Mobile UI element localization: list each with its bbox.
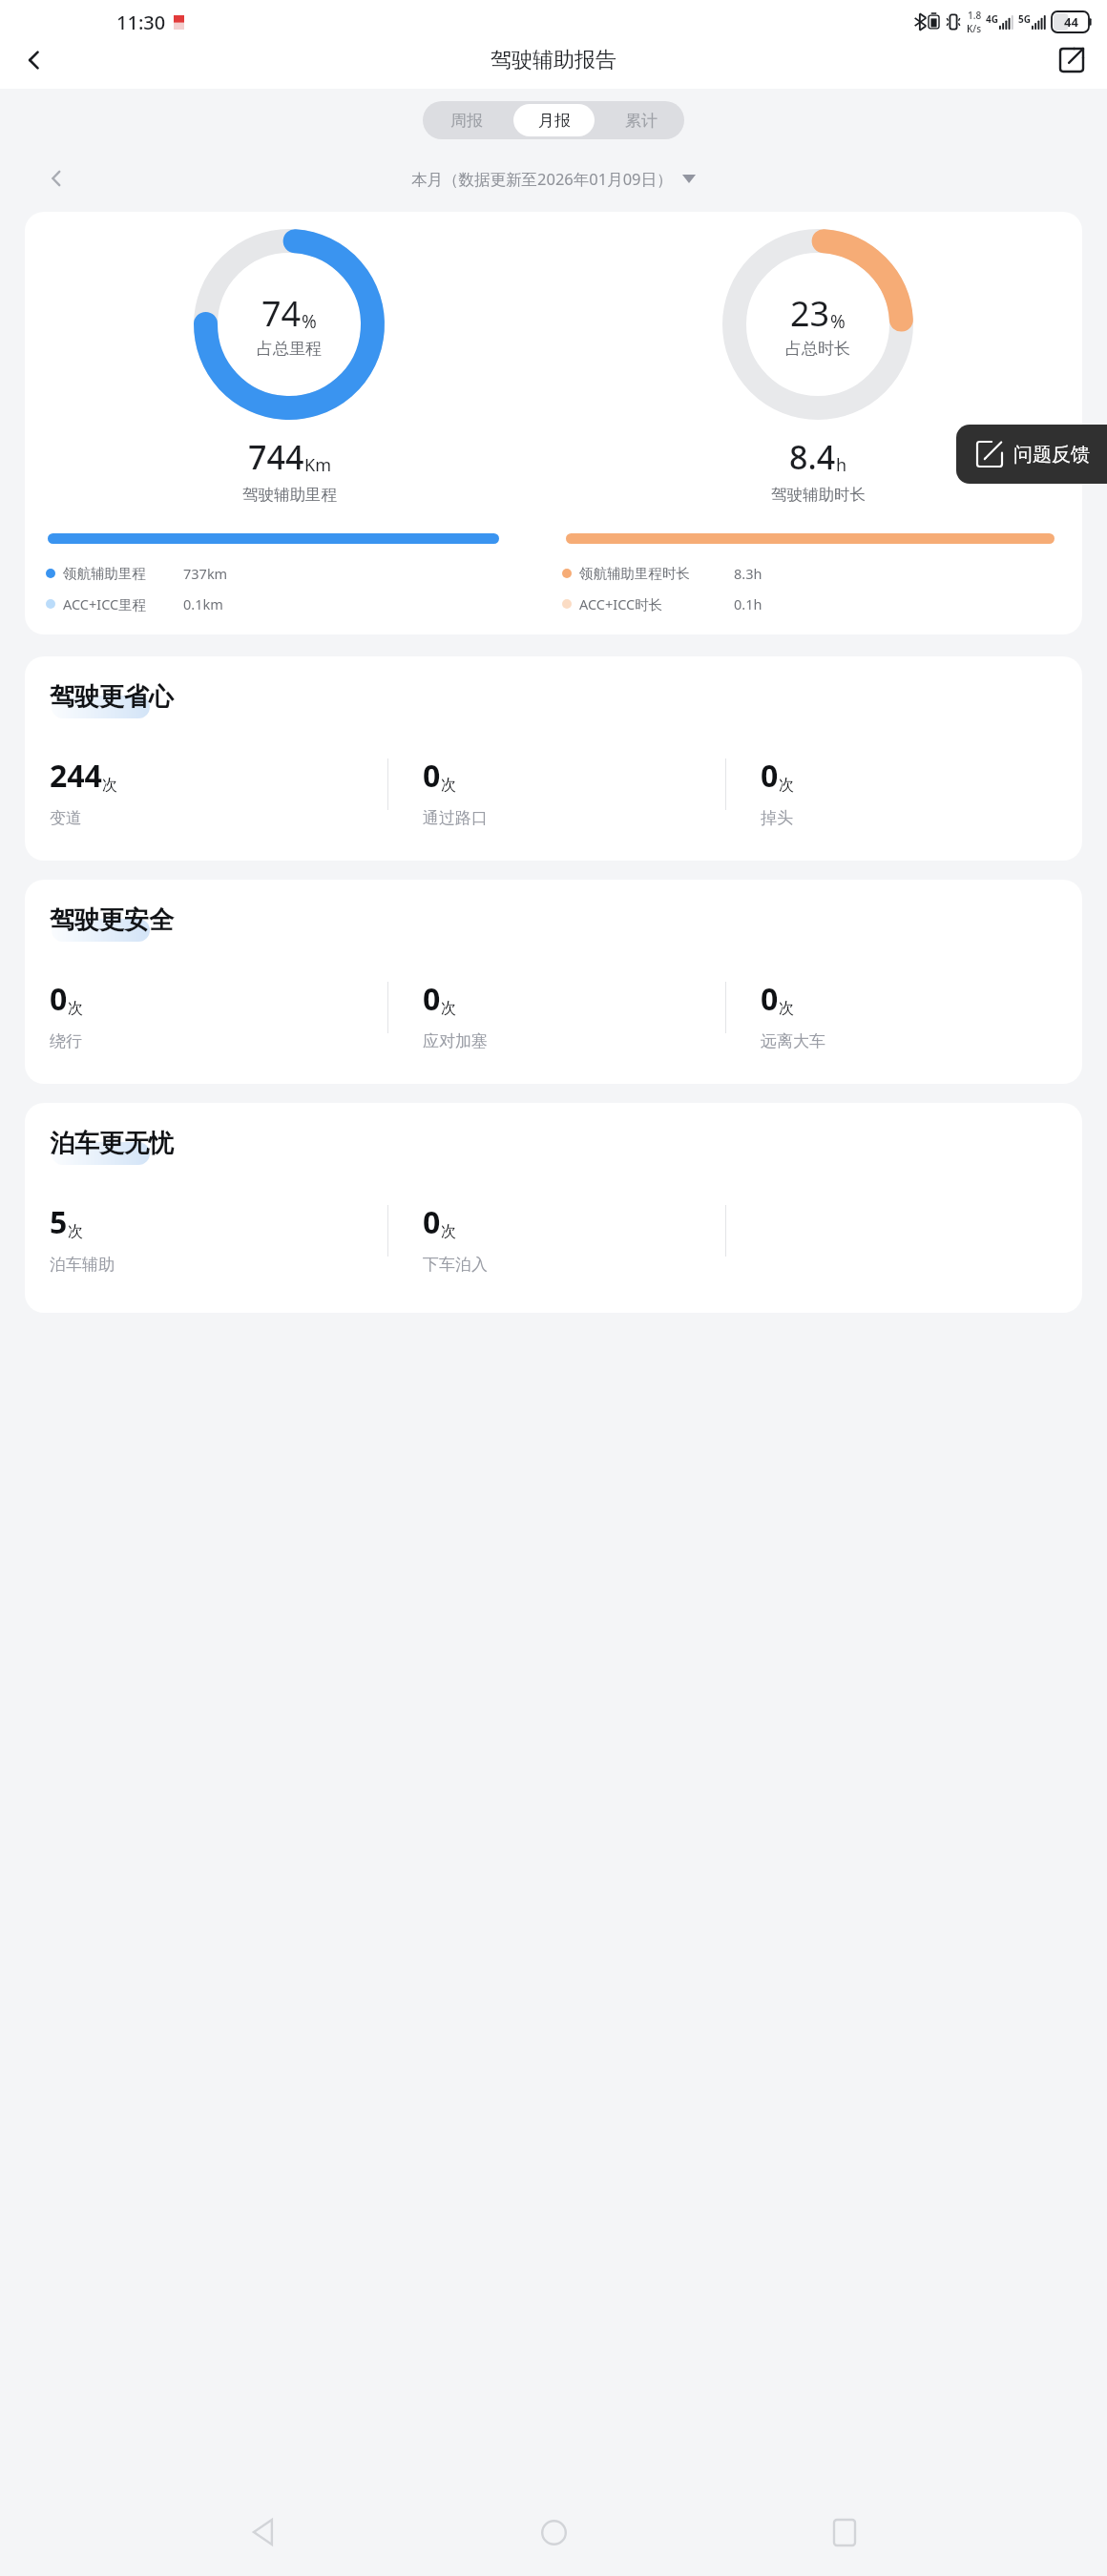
button[interactable]: 主页 <box>525 2503 582 2561</box>
staticText: 累计 <box>625 111 658 131</box>
staticText: Km <box>304 453 331 477</box>
staticText: 244 <box>50 755 102 797</box>
staticText: 8.4 <box>789 435 836 479</box>
staticText: 占总时长 <box>785 339 850 359</box>
staticText: 44 <box>1064 13 1078 31</box>
staticText: 0.1h <box>734 594 762 613</box>
button[interactable]: 返回 <box>234 2503 291 2561</box>
staticText: K/s <box>967 22 982 35</box>
staticText: 744 <box>248 435 304 479</box>
staticText: 次 <box>68 999 83 1018</box>
staticText: 0 <box>423 755 441 797</box>
staticText: 驾驶辅助时长 <box>771 485 866 505</box>
staticText: 下车泊入 <box>423 1255 488 1275</box>
button[interactable]: 最近任务 <box>816 2503 873 2561</box>
staticText: 5 <box>50 1201 68 1243</box>
staticText: 月报 <box>538 111 571 131</box>
staticText: 掉头 <box>761 808 793 828</box>
staticText: ACC+ICC里程 <box>63 594 147 613</box>
staticText: 0.1km <box>183 594 223 613</box>
staticText: 应对加塞 <box>423 1031 488 1051</box>
staticText: 次 <box>441 776 456 795</box>
staticText: 领航辅助里程 <box>63 565 146 582</box>
staticText: 0 <box>761 755 779 797</box>
staticText: 0 <box>50 978 68 1020</box>
staticText: 0 <box>761 978 779 1020</box>
staticText: 绕行 <box>50 1031 82 1051</box>
button[interactable]: 分享 <box>1052 43 1092 77</box>
staticText: 占总里程 <box>257 339 322 359</box>
staticText: 23 <box>790 290 830 337</box>
staticText: 通过路口 <box>423 808 488 828</box>
staticText: 74 <box>261 290 302 337</box>
staticText: 0 <box>423 978 441 1020</box>
staticText: 次 <box>441 999 456 1018</box>
staticText: 变道 <box>50 808 82 828</box>
staticText: 泊车更无忧 <box>50 1128 174 1159</box>
staticText: 驾驶辅助里程 <box>242 485 337 505</box>
staticText: 11:30 <box>116 10 166 35</box>
staticText: 领航辅助里程时长 <box>579 565 690 582</box>
staticText: 1.8 <box>968 9 982 22</box>
staticText: 次 <box>68 1222 83 1241</box>
staticText: h <box>836 453 847 477</box>
button[interactable]: 问题反馈 <box>956 425 1107 484</box>
button[interactable]: 周报 <box>426 104 508 136</box>
staticText: 4G <box>986 12 998 26</box>
button[interactable]: 上一月 <box>38 162 74 195</box>
staticText: 次 <box>102 776 117 795</box>
staticText: 本月（数据更新至2026年01月09日） <box>411 168 673 190</box>
staticText: ACC+ICC时长 <box>579 594 663 613</box>
staticText: 周报 <box>450 111 483 131</box>
staticText: 次 <box>779 999 794 1018</box>
staticText: 泊车辅助 <box>50 1255 115 1275</box>
staticText: 8.3h <box>734 564 762 583</box>
staticText: 问题反馈 <box>1013 443 1090 467</box>
staticText: 次 <box>441 1222 456 1241</box>
button[interactable]: 月报 <box>513 104 595 136</box>
button[interactable]: 返回 <box>15 43 53 77</box>
staticText: 次 <box>779 776 794 795</box>
staticText: 0 <box>423 1201 441 1243</box>
button[interactable]: 累计 <box>600 104 681 136</box>
staticText: % <box>830 309 846 334</box>
staticText: 驾驶更安全 <box>50 904 174 936</box>
staticText: % <box>302 309 317 334</box>
staticText: 驾驶更省心 <box>50 681 174 713</box>
button[interactable]: 本月（数据更新至2026年01月09日） <box>411 168 696 190</box>
staticText: 驾驶辅助报告 <box>491 47 616 73</box>
staticText: 远离大车 <box>761 1031 825 1051</box>
staticText: 737km <box>183 564 228 583</box>
staticText: 5G <box>1018 12 1031 26</box>
